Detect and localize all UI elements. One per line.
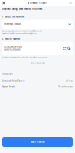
staticText: ~5 mins bbox=[66, 80, 73, 82]
staticText: Estimated Arrival Time bbox=[2, 80, 22, 82]
staticText: Ethereum (ERC20) bbox=[4, 23, 21, 25]
staticText: 6b0Cf41e7D29a85B bbox=[4, 49, 20, 51]
staticText: 1. Select the network bbox=[2, 16, 24, 18]
staticText: Deposit Arrival bbox=[2, 86, 14, 88]
staticText: 10 confirmations bbox=[58, 86, 73, 88]
button[interactable]: Copy address bbox=[67, 46, 71, 50]
button[interactable]: Share Address bbox=[2, 137, 73, 147]
staticText: Share Address bbox=[30, 141, 44, 143]
staticText: ADDITIONAL INFO bbox=[2, 74, 13, 75]
staticText: Deposit using your Wallet Address bbox=[2, 7, 42, 10]
staticText: Send the funds to this address. Double-c… bbox=[2, 57, 47, 58]
button[interactable]: More bbox=[67, 0, 74, 6]
button[interactable]: Ethereum (ERC20) bbox=[2, 20, 73, 29]
button[interactable]: Show QR code bbox=[63, 46, 67, 50]
staticText: Deposit Crypto bbox=[30, 2, 46, 4]
staticText: matches the platform you are withdrawing… bbox=[2, 33, 36, 34]
staticText: More Options bbox=[31, 62, 43, 64]
staticText: 0x7d5a3B4c9E1f82Ad bbox=[4, 46, 22, 48]
staticText: Network would send your funds through. M… bbox=[2, 30, 42, 32]
button[interactable]: Close bbox=[1, 0, 7, 6]
staticText: 2. Wallet Address bbox=[2, 38, 20, 40]
button[interactable]: More Options bbox=[2, 61, 73, 65]
